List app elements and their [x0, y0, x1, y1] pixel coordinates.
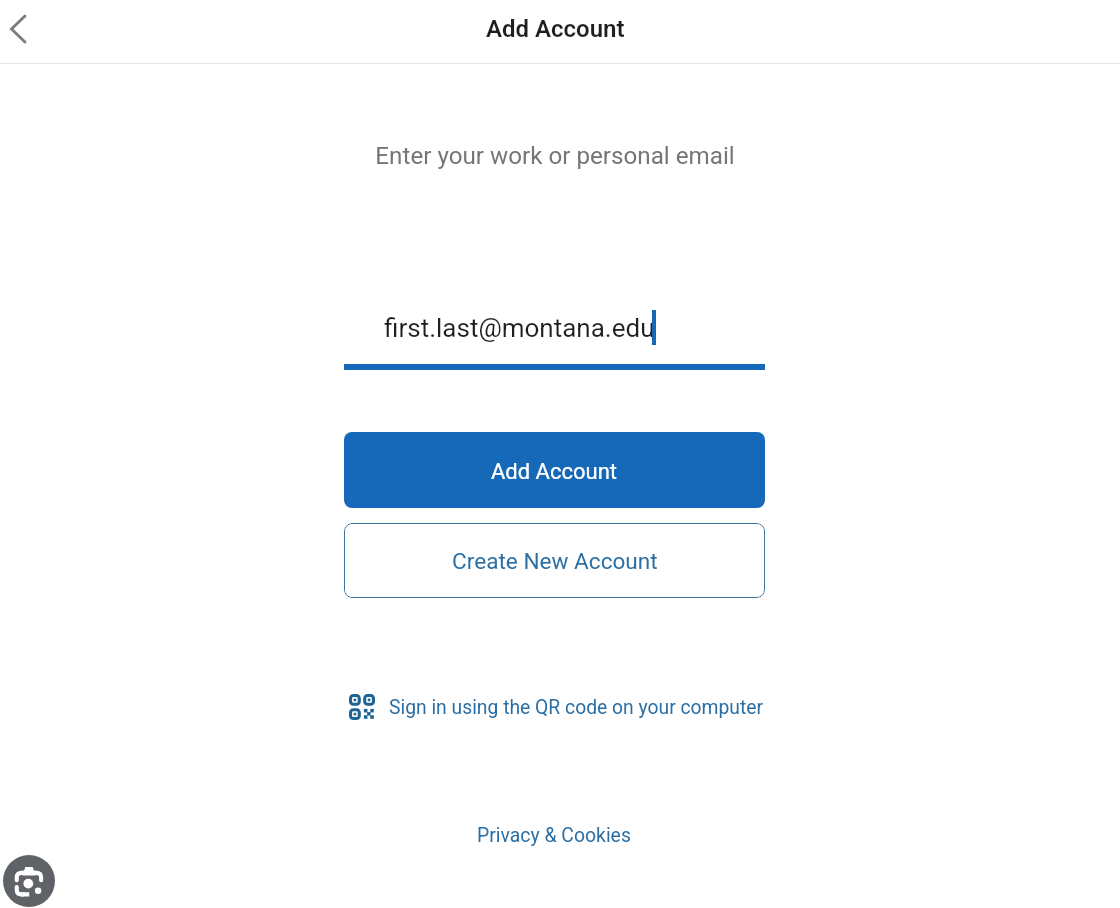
button[interactable]: Search with Lens — [3, 855, 55, 907]
staticText: first.last@montana.edu — [384, 313, 655, 343]
staticText: Add Account — [491, 459, 618, 485]
staticText: Create New Account — [452, 548, 658, 574]
button[interactable]: Create New Account — [344, 523, 765, 598]
button[interactable]: Privacy & Cookies — [469, 814, 639, 857]
button[interactable]: Add Account — [344, 432, 765, 508]
staticText: Enter your work or personal email — [0, 142, 1115, 170]
button[interactable]: Sign in using the QR code on your comput… — [349, 682, 764, 732]
staticText: Add Account — [486, 15, 625, 43]
button[interactable] — [344, 300, 765, 370]
staticText: Sign in using the QR code on your comput… — [389, 696, 764, 719]
staticText: Privacy & Cookies — [477, 824, 631, 847]
button[interactable]: Back — [0, 0, 56, 58]
